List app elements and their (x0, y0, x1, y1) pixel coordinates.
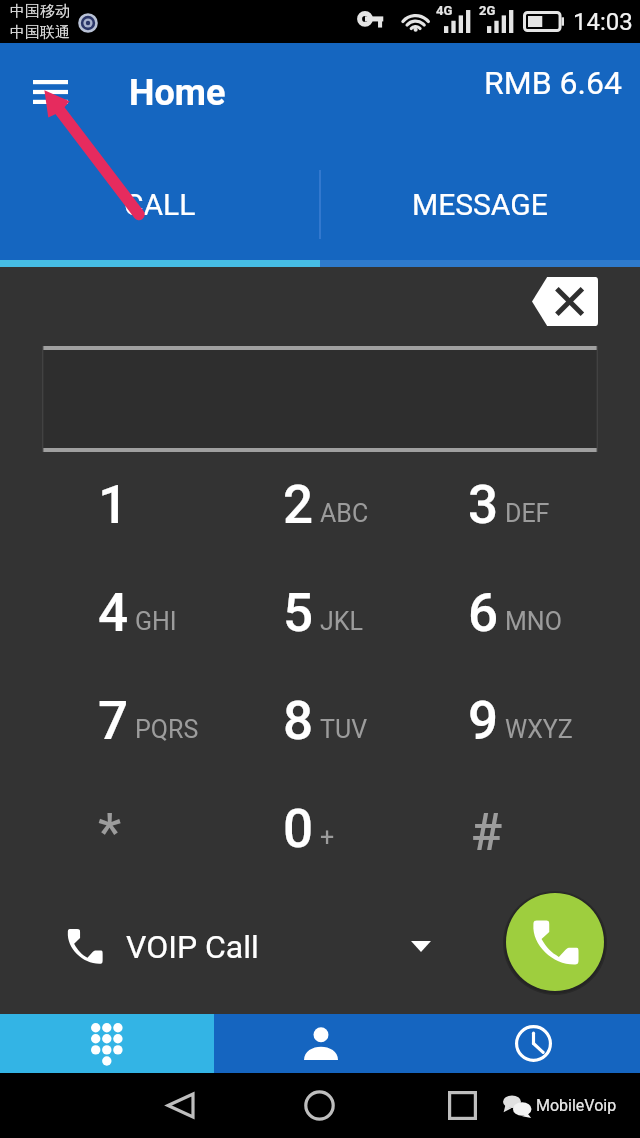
staticText: 6 (468, 582, 499, 644)
staticText: MobileVoip (536, 1096, 617, 1115)
button[interactable]: 7 (48, 667, 233, 775)
staticText: * (98, 802, 122, 863)
staticText: TUV (320, 715, 368, 744)
button[interactable]: 8 (233, 667, 418, 775)
button[interactable]: Contacts (214, 1014, 427, 1073)
staticText: 1 (98, 474, 129, 536)
button[interactable]: * (48, 775, 233, 883)
staticText: 4G (436, 3, 453, 18)
staticText: 7 (98, 690, 129, 752)
button[interactable]: Recents (427, 1014, 640, 1073)
button[interactable]: Open navigation menu (18, 62, 82, 122)
staticText: # (471, 802, 503, 863)
button[interactable]: MESSAGE (320, 146, 640, 260)
staticText: 8 (283, 690, 314, 752)
staticText: ABC (320, 499, 369, 528)
staticText: MESSAGE (412, 187, 548, 222)
button[interactable]: Backspace (532, 277, 598, 326)
staticText: CALL (124, 187, 196, 222)
staticText: 5 (283, 582, 314, 644)
button[interactable]: # (418, 775, 603, 883)
staticText: JKL (320, 607, 363, 636)
staticText: DEF (505, 499, 550, 528)
button[interactable]: CALL (0, 146, 320, 260)
staticText: + (320, 823, 335, 852)
button[interactable]: VOIP Call (30, 907, 451, 987)
button[interactable]: 2 (233, 451, 418, 559)
staticText: 4 (98, 582, 129, 644)
button[interactable]: Recent apps (432, 1075, 492, 1135)
staticText: GHI (135, 607, 177, 636)
button[interactable]: Call (506, 893, 604, 991)
button[interactable]: 0 (233, 775, 418, 883)
staticText: 0 (283, 798, 314, 860)
button[interactable]: Dialpad (0, 1014, 214, 1073)
staticText: 2 (283, 474, 314, 536)
button[interactable]: Back (150, 1075, 210, 1135)
staticText: WXYZ (505, 715, 573, 744)
staticText: 中国移动 (10, 2, 70, 21)
staticText: RMB 6.64 (484, 64, 622, 102)
button[interactable] (42, 346, 598, 452)
button[interactable]: 4 (48, 559, 233, 667)
staticText: VOIP Call (126, 928, 259, 966)
button[interactable]: 5 (233, 559, 418, 667)
staticText: 中国联通 (10, 23, 70, 42)
button[interactable]: 6 (418, 559, 603, 667)
button[interactable]: 9 (418, 667, 603, 775)
staticText: MNO (505, 607, 562, 636)
staticText: 14:03 (573, 8, 633, 36)
button[interactable]: 1 (48, 451, 233, 559)
staticText: 9 (468, 690, 499, 752)
staticText: 3 (468, 474, 499, 536)
staticText: PQRS (135, 715, 199, 744)
button[interactable]: Home (289, 1075, 349, 1135)
staticText: Home (129, 72, 226, 114)
button[interactable]: 3 (418, 451, 603, 559)
staticText: 2G (479, 3, 496, 18)
